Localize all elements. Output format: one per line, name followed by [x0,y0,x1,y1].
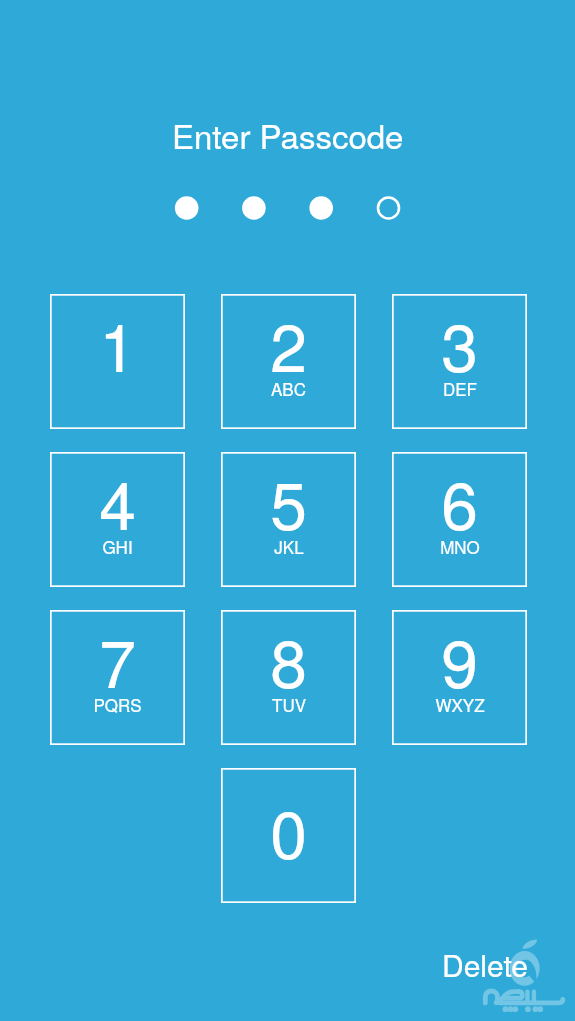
staticText: Enter Passcode [172,111,404,158]
staticText: 6 [441,454,478,549]
staticText: 7 [99,612,136,707]
button[interactable]: 5 [221,452,356,587]
staticText: 0 [270,783,307,878]
button[interactable]: Delete [430,931,540,998]
button[interactable]: 1 [50,294,185,429]
staticText: 8 [270,612,307,707]
staticText: JKL [274,534,304,558]
staticText: 2 [270,296,307,391]
button[interactable]: 8 [221,610,356,745]
other: Passcode progress: 3 of 4 digits entered [0,0,575,1021]
button[interactable]: 2 [221,294,356,429]
staticText: DEF [443,376,477,400]
staticText: Delete [442,943,528,986]
button[interactable]: 0 [221,768,356,903]
button[interactable]: 4 [50,452,185,587]
staticText: ABC [271,376,306,400]
button[interactable]: 9 [392,610,527,745]
button[interactable]: 3 [392,294,527,429]
staticText: 9 [441,612,478,707]
staticText: 3 [441,296,478,391]
staticText: MNO [440,534,480,558]
staticText: 5 [270,454,307,549]
staticText: 1 [99,296,136,391]
button[interactable]: 7 [50,610,185,745]
staticText: TUV [272,692,306,716]
button[interactable]: 6 [392,452,527,587]
staticText: 4 [99,454,136,549]
staticText: WXYZ [435,692,485,716]
staticText: GHI [102,534,133,558]
staticText: PQRS [93,692,142,716]
